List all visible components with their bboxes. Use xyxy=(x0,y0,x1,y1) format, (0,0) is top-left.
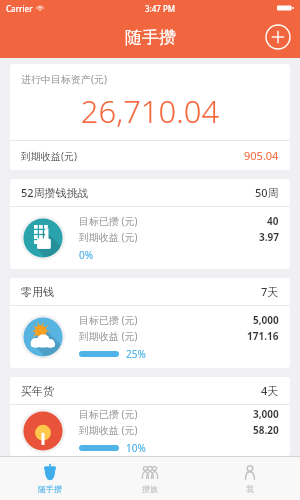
staticText: 目标已攒 (元) xyxy=(79,407,138,421)
staticText: 5,000 xyxy=(253,313,279,327)
staticText: 到期收益 (元) xyxy=(79,230,138,244)
button[interactable]: 随手攒 xyxy=(0,457,100,500)
staticText: 7天 xyxy=(261,284,279,299)
staticText: 25% xyxy=(126,347,146,361)
staticText: 目标已攒 (元) xyxy=(79,313,138,327)
staticText: 0% xyxy=(79,248,94,262)
staticText: 买年货 xyxy=(21,384,54,398)
button[interactable]: 买年货 xyxy=(10,377,290,456)
staticText: 到期收益 (元) xyxy=(79,329,138,343)
staticText: 零用钱 xyxy=(21,285,54,299)
staticText: 10% xyxy=(126,441,146,455)
staticText: 我 xyxy=(246,484,254,494)
staticText: Carrier xyxy=(6,3,33,14)
staticText: 攒族 xyxy=(142,484,158,494)
staticText: 171.16 xyxy=(247,329,279,343)
staticText: 40 xyxy=(267,214,279,228)
staticText: 50周 xyxy=(255,185,279,200)
staticText: 52周攒钱挑战 xyxy=(21,185,89,200)
staticText: 到期收益(元) xyxy=(21,149,77,163)
staticText: 随手攒 xyxy=(125,27,176,48)
staticText: 目标已攒 (元) xyxy=(79,214,138,228)
staticText: 905.04 xyxy=(244,148,279,163)
staticText: 58.20 xyxy=(253,423,279,437)
staticText: 3,000 xyxy=(253,407,279,421)
staticText: 26,710.04 xyxy=(10,90,290,132)
button[interactable]: 零用钱 xyxy=(10,278,290,368)
staticText: 随手攒 xyxy=(38,484,62,494)
staticText: 3.97 xyxy=(259,230,279,244)
button[interactable]: 我 xyxy=(200,457,300,500)
button[interactable]: 52周攒钱挑战 xyxy=(10,179,290,269)
staticText: 进行中目标资产(元) xyxy=(21,72,107,86)
staticText: 3:47 PM xyxy=(145,3,176,14)
button[interactable]: 进行中目标资产(元) xyxy=(10,64,290,170)
button[interactable]: Add goal xyxy=(265,24,291,50)
button[interactable]: 攒族 xyxy=(100,457,200,500)
staticText: 4天 xyxy=(261,383,279,398)
staticText: 到期收益 (元) xyxy=(79,423,138,437)
